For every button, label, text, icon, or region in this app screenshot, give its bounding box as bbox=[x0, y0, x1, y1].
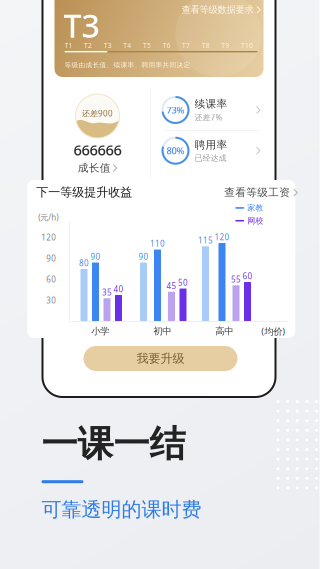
staticText: 80% bbox=[166, 144, 184, 157]
staticText: 60 bbox=[46, 274, 56, 285]
staticText: T8 bbox=[202, 41, 210, 50]
staticText: T9 bbox=[221, 41, 229, 50]
staticText: (均价) bbox=[261, 325, 285, 337]
staticText: 网校 bbox=[247, 216, 263, 226]
staticText: 等级由成长值、续课率、聘用率共同决定 bbox=[64, 61, 190, 69]
staticText: 聘用率 bbox=[194, 138, 227, 152]
staticText: 可靠透明的课时费 bbox=[41, 497, 201, 522]
staticText: 查看等级数据要求 bbox=[181, 4, 253, 15]
staticText: 还差900 bbox=[82, 108, 113, 119]
button[interactable]: 成长值 bbox=[78, 161, 117, 175]
staticText: T3 bbox=[104, 41, 112, 50]
staticText: 已经达成 bbox=[194, 153, 226, 163]
staticText: 666666 bbox=[73, 140, 121, 159]
staticText: 90 bbox=[90, 251, 100, 262]
button[interactable]: 查看等级工资 bbox=[224, 186, 298, 199]
staticText: 家教 bbox=[247, 203, 263, 213]
staticText: 45 bbox=[166, 281, 176, 291]
staticText: 55 bbox=[231, 274, 241, 285]
staticText: 73% bbox=[166, 104, 184, 116]
button[interactable]: 80% bbox=[156, 131, 268, 171]
staticText: T1 bbox=[64, 41, 72, 50]
staticText: (元/h) bbox=[38, 212, 58, 223]
staticText: 查看等级工资 bbox=[224, 186, 290, 199]
staticText: 50 bbox=[178, 277, 188, 288]
staticText: T3 bbox=[63, 4, 99, 46]
button[interactable]: 我要升级 bbox=[83, 346, 237, 371]
staticText: 高中 bbox=[215, 325, 233, 337]
staticText: 80 bbox=[79, 258, 89, 268]
staticText: 30 bbox=[46, 295, 56, 306]
staticText: T4 bbox=[123, 41, 131, 50]
staticText: T6 bbox=[162, 41, 170, 50]
staticText: 还差7% bbox=[194, 112, 222, 123]
staticText: 120 bbox=[214, 232, 229, 242]
staticText: 120 bbox=[41, 232, 56, 243]
staticText: 续课率 bbox=[194, 97, 227, 110]
staticText: 115 bbox=[198, 235, 213, 246]
staticText: 60 bbox=[242, 271, 252, 281]
staticText: 35 bbox=[102, 287, 112, 298]
staticText: T7 bbox=[182, 41, 190, 50]
staticText: 初中 bbox=[153, 325, 171, 337]
staticText: T5 bbox=[143, 41, 151, 50]
staticText: 我要升级 bbox=[136, 351, 184, 366]
button[interactable]: 查看等级数据要求 bbox=[181, 4, 261, 15]
staticText: T2 bbox=[84, 41, 92, 50]
staticText: 下一等级提升收益 bbox=[36, 185, 132, 200]
staticText: 90 bbox=[46, 253, 56, 264]
staticText: T10 bbox=[241, 41, 253, 50]
staticText: 小学 bbox=[91, 325, 109, 337]
staticText: 110 bbox=[150, 238, 165, 249]
staticText: 90 bbox=[138, 251, 148, 262]
button[interactable]: 73% bbox=[156, 90, 268, 130]
staticText: 40 bbox=[113, 284, 123, 294]
staticText: 一课一结 bbox=[41, 422, 185, 466]
staticText: 成长值 bbox=[78, 161, 111, 175]
